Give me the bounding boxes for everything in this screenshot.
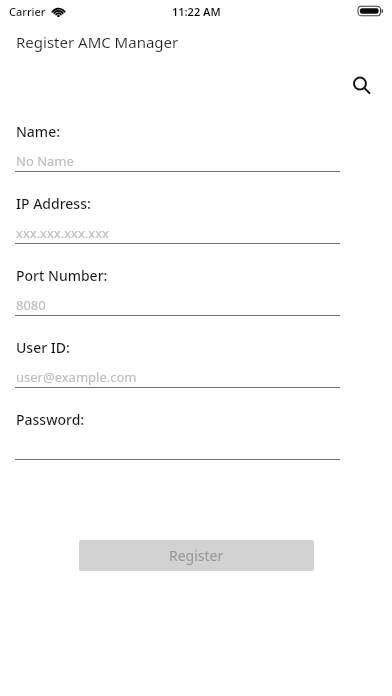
button[interactable]: Register: [79, 540, 314, 571]
staticText: Name:: [16, 122, 60, 141]
staticText: xxx.xxx.xxx.xxx: [16, 224, 109, 242]
staticText: Carrier: [9, 4, 46, 19]
staticText: No Name: [16, 152, 74, 170]
button[interactable]: No Name: [0, 150, 392, 171]
staticText: 8080: [16, 296, 46, 314]
button[interactable]: xxx.xxx.xxx.xxx: [0, 222, 392, 243]
staticText: Register AMC Manager: [16, 32, 179, 52]
staticText: user@example.com: [16, 368, 137, 386]
button[interactable]: 8080: [0, 294, 392, 315]
staticText: Port Number:: [16, 266, 108, 285]
staticText: Password:: [16, 410, 85, 429]
staticText: 11:22 AM: [172, 4, 221, 19]
button[interactable]: user@example.com: [0, 366, 392, 387]
staticText: Register: [169, 546, 224, 565]
staticText: User ID:: [16, 338, 70, 357]
staticText: IP Address:: [16, 194, 91, 213]
button[interactable]: Search: [346, 70, 376, 100]
